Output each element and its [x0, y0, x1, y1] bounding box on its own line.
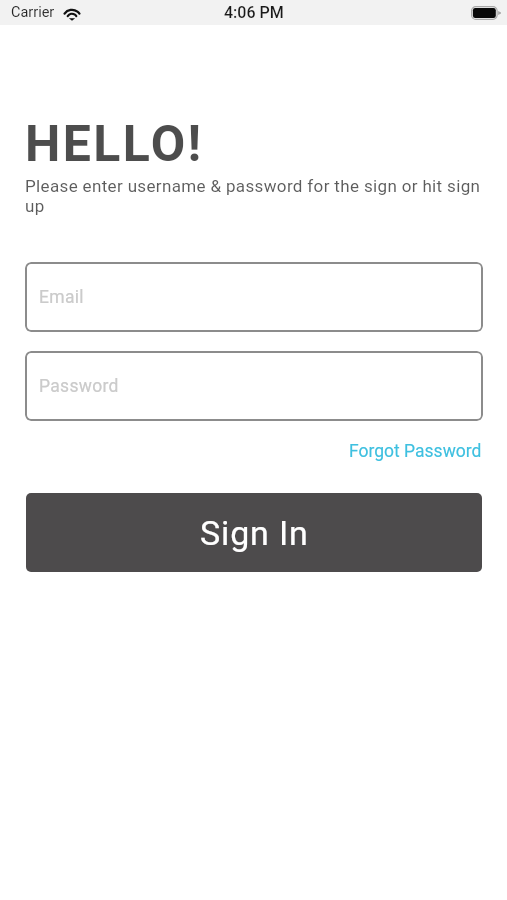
- other: Battery: [471, 6, 501, 20]
- other: Wi-Fi: [62, 6, 82, 20]
- staticText: Carrier: [11, 4, 55, 21]
- staticText: Password: [39, 376, 119, 397]
- button[interactable]: Email: [25, 262, 483, 332]
- staticText: HELLO!: [25, 115, 204, 174]
- button[interactable]: Sign In: [26, 493, 482, 572]
- staticText: Email: [39, 287, 84, 308]
- staticText: Sign In: [200, 513, 309, 553]
- staticText: Forgot Password: [349, 441, 482, 462]
- button[interactable]: Forgot Password: [343, 435, 488, 468]
- staticText: 4:06 PM: [224, 3, 284, 22]
- staticText: Please enter username & password for the…: [25, 176, 482, 216]
- button[interactable]: Password: [25, 351, 483, 421]
